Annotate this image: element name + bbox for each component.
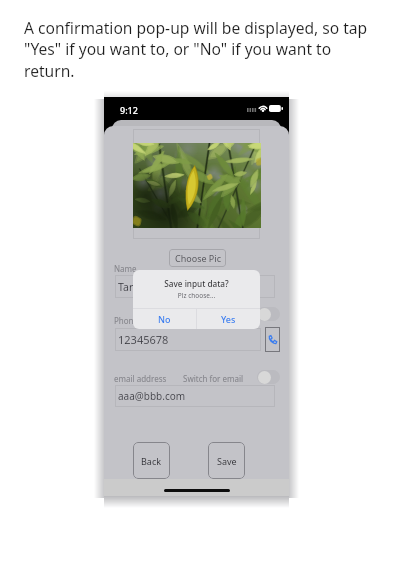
button[interactable]: Yes — [197, 309, 260, 329]
button[interactable]: Toggle — [257, 370, 280, 384]
button[interactable]: No — [133, 309, 196, 329]
staticText: Yes — [221, 313, 236, 325]
staticText: Taro — [118, 280, 140, 294]
button[interactable]: Save — [208, 442, 245, 479]
staticText: 12345678 — [118, 332, 169, 347]
staticText: Choose Pic — [175, 252, 221, 264]
button[interactable]: Call — [265, 327, 280, 352]
staticText: Save — [217, 455, 237, 467]
staticText: Phone — [114, 315, 139, 326]
staticText: Switch for email — [183, 373, 244, 384]
staticText: Save input data? — [133, 278, 260, 289]
button[interactable]: Back — [133, 442, 170, 479]
staticText: aaa@bbb.com — [118, 389, 186, 403]
button[interactable]: Choose Pic — [169, 249, 226, 267]
staticText: A confirmation pop-up will be displayed,… — [24, 17, 394, 82]
staticText: No — [158, 313, 171, 325]
staticText: Back — [141, 455, 162, 467]
staticText: email address — [114, 373, 167, 384]
staticText: Name — [114, 263, 137, 274]
staticText: Plz choose... — [133, 291, 260, 300]
button[interactable]: Toggle — [257, 307, 280, 321]
staticText: 9:12 — [120, 104, 138, 116]
